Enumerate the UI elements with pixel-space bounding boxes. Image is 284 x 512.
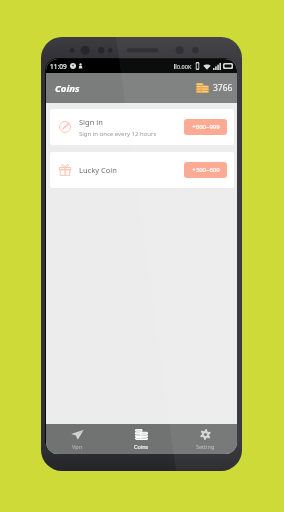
button[interactable]: Coins <box>109 424 173 454</box>
button[interactable]: Setting <box>173 424 237 454</box>
staticText: 0.00K <box>177 63 192 70</box>
staticText: Sign in once every 12 hours <box>79 130 157 138</box>
staticText: Coins <box>134 443 149 450</box>
button[interactable]: Sign in <box>50 109 234 145</box>
staticText: 3766 <box>213 82 233 94</box>
button[interactable]: Vpn <box>46 424 109 454</box>
button[interactable]: 3766 <box>196 78 233 98</box>
staticText: Coins <box>55 82 80 95</box>
staticText: Lucky Coin <box>79 165 117 175</box>
staticText: 11:09 <box>50 62 67 71</box>
button[interactable]: +600~999 <box>184 119 227 135</box>
staticText: Vpn <box>72 443 83 450</box>
button[interactable]: +300~600 <box>184 162 227 178</box>
staticText: +300~600 <box>192 166 220 174</box>
staticText: Sign in <box>79 117 103 127</box>
staticText: Setting <box>196 443 215 450</box>
staticText: +600~999 <box>192 123 220 131</box>
button[interactable]: Lucky Coin <box>50 152 234 188</box>
